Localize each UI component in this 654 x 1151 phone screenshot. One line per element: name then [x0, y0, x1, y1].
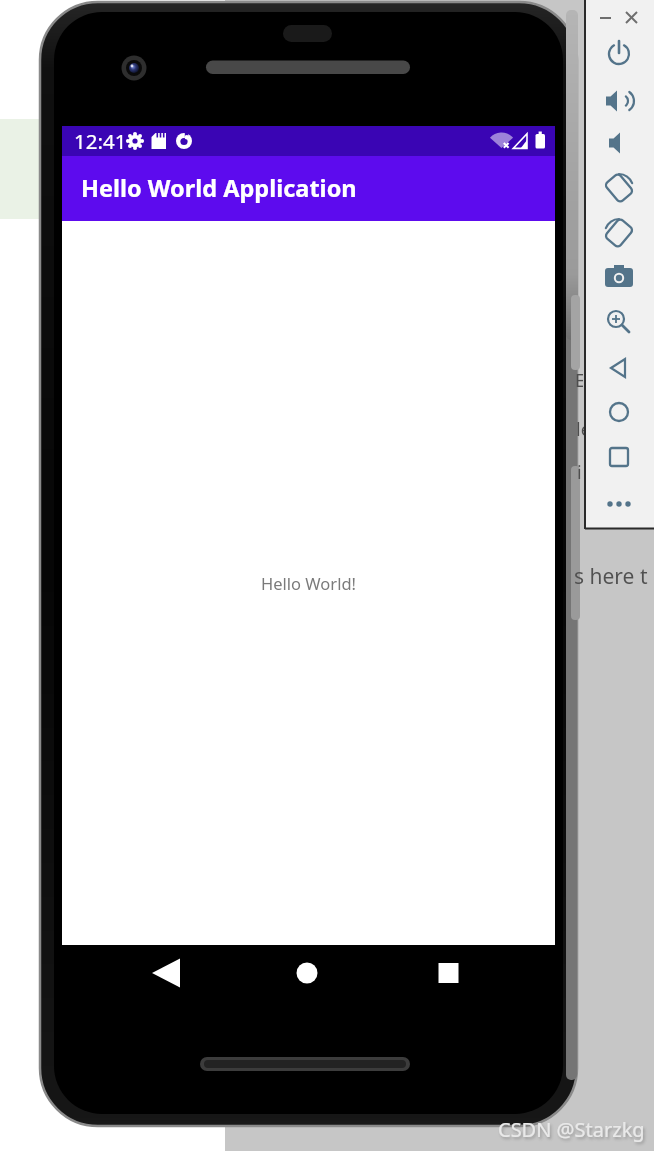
button[interactable]: [601, 394, 637, 430]
button[interactable]: [136, 943, 196, 1003]
staticText: 12:41: [74, 127, 127, 155]
staticText: CSDN @Starzkg: [498, 1116, 645, 1143]
button[interactable]: [601, 83, 637, 119]
staticText: le: [576, 417, 584, 439]
button[interactable]: [598, 9, 614, 25]
button[interactable]: [601, 125, 637, 161]
staticText: Hello World!: [261, 572, 356, 594]
button[interactable]: [277, 943, 337, 1003]
staticText: s here t: [574, 562, 648, 591]
button[interactable]: [601, 259, 637, 295]
button[interactable]: [418, 943, 478, 1003]
button[interactable]: [601, 439, 637, 475]
button[interactable]: [623, 9, 639, 25]
button[interactable]: [601, 350, 637, 386]
staticText: i: [577, 460, 582, 482]
staticText: Hello World Application: [81, 172, 357, 204]
button[interactable]: [601, 215, 637, 251]
button[interactable]: [601, 304, 637, 340]
button[interactable]: [601, 170, 637, 206]
staticText: EV: [575, 368, 583, 390]
button[interactable]: [601, 486, 637, 522]
button[interactable]: [601, 36, 637, 72]
